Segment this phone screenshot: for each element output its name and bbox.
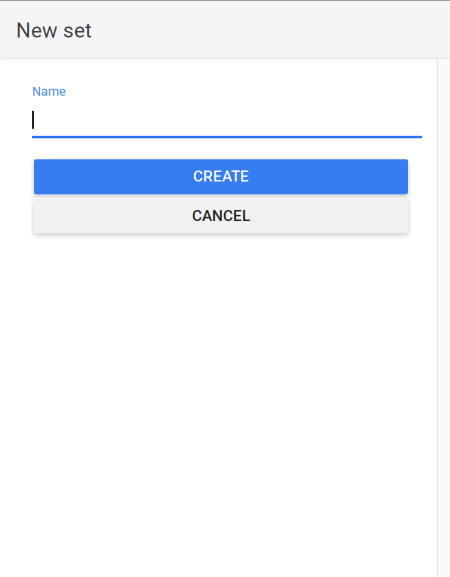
staticText: Name xyxy=(32,84,66,99)
button[interactable]: CANCEL xyxy=(34,197,408,233)
staticText: New set xyxy=(16,18,92,43)
staticText: CREATE xyxy=(193,167,249,185)
staticText: CANCEL xyxy=(192,207,250,225)
button[interactable]: CREATE xyxy=(34,159,408,194)
